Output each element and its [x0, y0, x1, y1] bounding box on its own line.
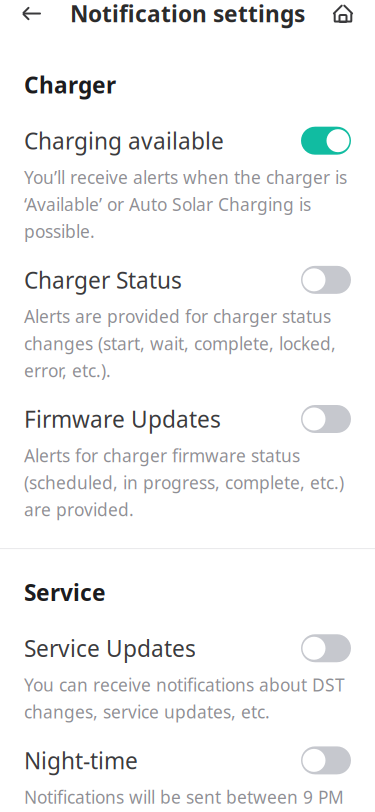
staticText: Service Updates [24, 633, 196, 663]
staticText: Charging available [24, 126, 224, 156]
staticText: Charger Status [24, 265, 182, 295]
staticText: You’ll receive alerts when the charger i… [24, 166, 347, 243]
button[interactable]: Night-time [0, 723, 375, 812]
button[interactable]: Charging available [0, 100, 375, 243]
button[interactable]: Charger Status [0, 243, 375, 382]
staticText: Alerts are provided for charger status c… [24, 305, 336, 382]
button[interactable]: Back [20, 0, 64, 35]
staticText: Charger [24, 69, 116, 100]
staticText: Notification settings [70, 0, 305, 29]
staticText: Alerts for charger firmware status (sche… [24, 444, 344, 521]
staticText: You can receive notifications about DST … [24, 673, 345, 723]
button[interactable]: Service Updates [0, 607, 375, 723]
staticText: Service [24, 577, 106, 607]
button[interactable]: Firmware Updates [0, 382, 375, 521]
button[interactable]: Home [311, 0, 355, 35]
staticText: Firmware Updates [24, 404, 221, 434]
staticText: Night-time [24, 745, 138, 775]
staticText: Notifications will be sent between 9 PM … [24, 785, 344, 812]
